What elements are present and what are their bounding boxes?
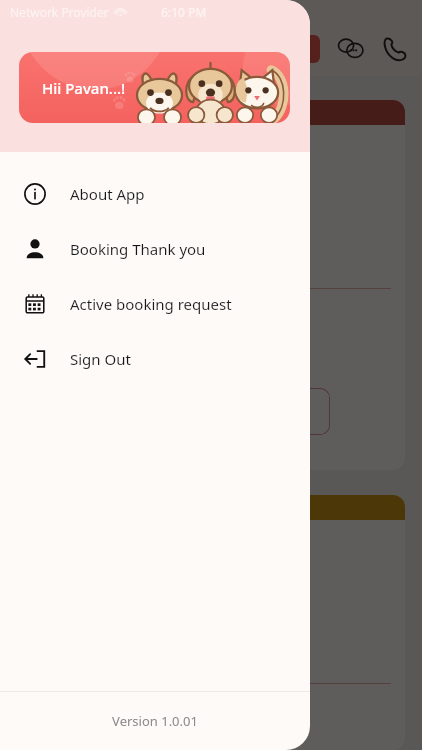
button[interactable]: Sign Out <box>0 331 310 386</box>
staticText: Sign Out <box>70 349 131 369</box>
staticText: Hii Pavan...! <box>42 78 126 98</box>
staticText: Booking <box>249 40 300 58</box>
staticText: 6:10 PM <box>161 4 207 20</box>
button[interactable] <box>28 388 330 435</box>
button[interactable]: Call <box>378 32 412 66</box>
button[interactable]: Messages <box>334 32 368 66</box>
staticText: About App <box>70 184 145 204</box>
staticText: Booking Thank you <box>70 239 206 259</box>
button[interactable]: Booking <box>228 35 320 63</box>
button[interactable] <box>14 100 405 470</box>
staticText: Network Provider <box>10 4 109 20</box>
button[interactable]: Booking Thank you <box>0 221 310 276</box>
button[interactable] <box>14 495 405 750</box>
button[interactable]: Active booking request <box>0 276 310 331</box>
staticText: Active booking request <box>70 294 232 314</box>
button[interactable]: About App <box>0 166 310 221</box>
staticText: Version 1.0.01 <box>112 712 198 730</box>
button[interactable]: Hii Pavan...! <box>19 52 290 123</box>
